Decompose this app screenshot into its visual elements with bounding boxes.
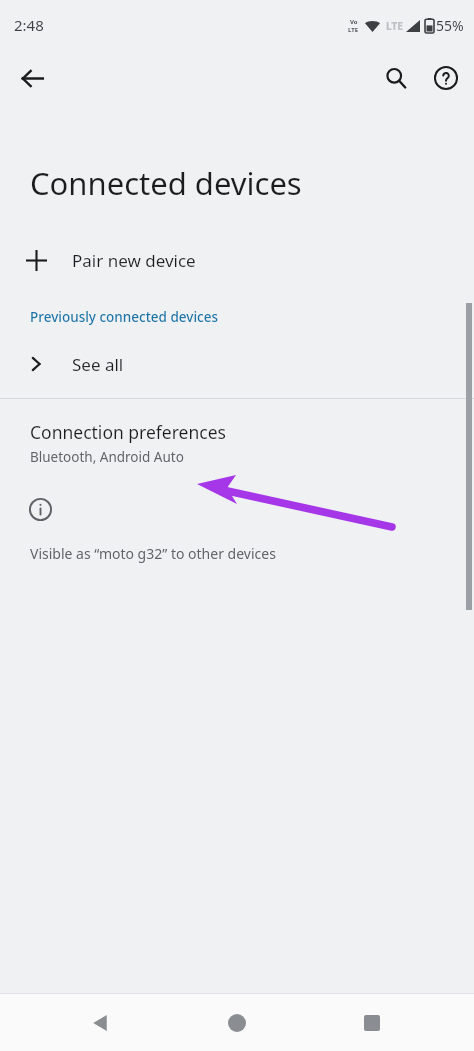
button[interactable]: Back xyxy=(10,56,54,100)
button[interactable]: Home xyxy=(215,1001,259,1045)
staticText: 55% xyxy=(436,16,464,35)
button[interactable]: Help xyxy=(424,56,468,100)
button[interactable]: Connection preferences xyxy=(0,418,474,472)
button[interactable]: See all xyxy=(0,342,474,386)
staticText: LTE xyxy=(386,19,403,33)
button[interactable]: Recent apps xyxy=(350,1001,394,1045)
staticText: Visible as “moto g32” to other devices xyxy=(30,544,276,563)
staticText: See all xyxy=(72,353,124,376)
button[interactable]: Pair new device xyxy=(0,236,474,284)
button[interactable]: Back xyxy=(78,1001,122,1045)
staticText: Connected devices xyxy=(30,162,302,204)
staticText: LTE xyxy=(348,26,359,34)
button[interactable]: Search xyxy=(374,56,418,100)
staticText: Vo xyxy=(350,18,358,26)
staticText: 2:48 xyxy=(14,15,44,35)
staticText: Previously connected devices xyxy=(30,308,219,326)
staticText: Pair new device xyxy=(72,249,196,272)
staticText: Bluetooth, Android Auto xyxy=(30,448,184,466)
staticText: Connection preferences xyxy=(30,420,226,444)
